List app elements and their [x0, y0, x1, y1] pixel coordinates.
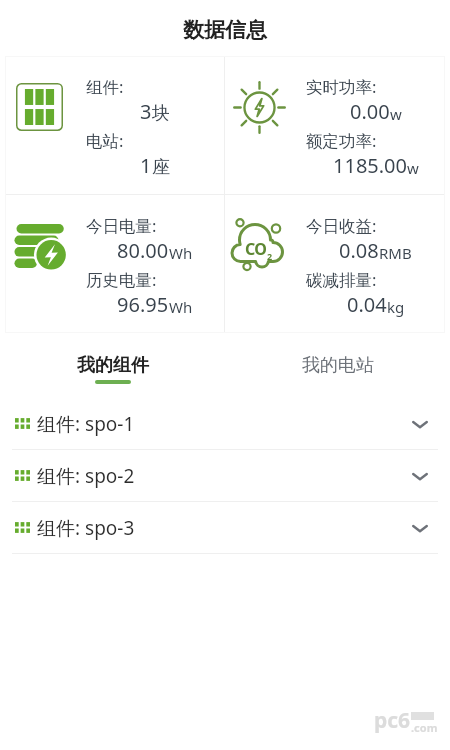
staticText: 额定功率: — [306, 129, 377, 152]
staticText: RMB — [379, 243, 412, 263]
button[interactable]: 组件: spo-3 — [0, 502, 450, 554]
staticText: pc6 — [374, 706, 411, 735]
other: Expand — [410, 414, 430, 434]
staticText: 组件: spo-2 — [37, 463, 135, 489]
staticText: 我的电站 — [302, 354, 374, 377]
staticText: 组件: — [86, 75, 124, 98]
button[interactable]: 我的组件 — [0, 333, 225, 391]
staticText: 80.00 — [117, 237, 169, 264]
staticText: kg — [387, 297, 405, 317]
staticText: 我的组件 — [77, 354, 149, 377]
staticText: 今日电量: — [86, 214, 157, 237]
staticText: 数据信息 — [183, 17, 267, 43]
button[interactable]: 组件: spo-2 — [0, 450, 450, 502]
staticText: 0.04 — [347, 291, 387, 318]
staticText: 1185.00 — [333, 152, 407, 179]
staticText: 实时功率: — [306, 75, 377, 98]
staticText: 块 — [152, 102, 170, 125]
staticText: 1 — [140, 152, 152, 179]
staticText: 组件: spo-1 — [37, 411, 135, 437]
staticText: 组件: spo-3 — [37, 515, 135, 541]
staticText: 2 — [267, 250, 273, 262]
button[interactable]: 组件: spo-1 — [0, 398, 450, 450]
staticText: Wh — [169, 243, 193, 263]
staticText: CO — [245, 238, 267, 260]
button[interactable]: 我的电站 — [225, 333, 450, 391]
staticText: w — [390, 104, 402, 124]
staticText: 0.00 — [350, 98, 390, 125]
other: Expand — [410, 518, 430, 538]
staticText: 3 — [140, 98, 152, 125]
other: Expand — [410, 466, 430, 486]
staticText: Wh — [169, 297, 193, 317]
staticText: w — [407, 158, 419, 178]
staticText: 历史电量: — [86, 268, 157, 291]
staticText: 96.95 — [117, 291, 169, 318]
staticText: 电站: — [86, 129, 124, 152]
staticText: 碳减排量: — [306, 268, 377, 291]
staticText: 座 — [152, 156, 170, 179]
staticText: .com — [411, 720, 438, 735]
staticText: 今日收益: — [306, 214, 377, 237]
staticText: 0.08 — [339, 237, 379, 264]
